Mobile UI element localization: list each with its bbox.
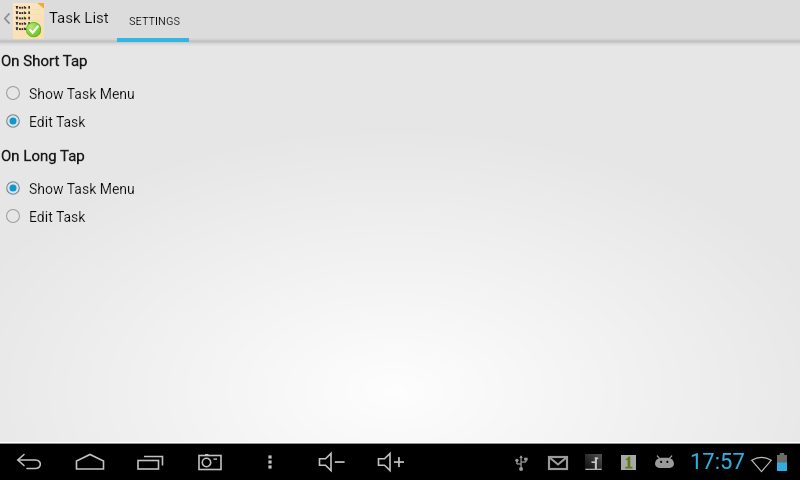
staticText: On Long Tap — [1, 147, 85, 165]
staticText: Edit Task — [29, 209, 86, 225]
button[interactable]: Recent apps — [120, 444, 180, 480]
staticText: Show Task Menu — [29, 181, 135, 197]
button[interactable]: Show Task Menu — [0, 174, 800, 202]
button[interactable]: SETTINGS — [117, 0, 188, 42]
button[interactable]: More options — [240, 444, 300, 480]
staticText: 17:57 — [690, 449, 745, 475]
button[interactable]: Show Task Menu — [0, 79, 800, 107]
button[interactable]: Volume down — [300, 444, 360, 480]
button[interactable]: Navigate up — [0, 0, 13, 37]
button[interactable]: Volume up — [360, 444, 420, 480]
button[interactable]: Edit Task — [0, 107, 800, 135]
staticText: Task List — [49, 9, 109, 27]
staticText: On Short Tap — [1, 52, 88, 70]
staticText: Edit Task — [29, 114, 86, 130]
staticText: SETTINGS — [129, 15, 180, 28]
button[interactable]: Edit Task — [0, 202, 800, 230]
button[interactable]: Home — [60, 444, 120, 480]
staticText: Show Task Menu — [29, 86, 135, 102]
button[interactable]: Screenshot — [180, 444, 240, 480]
button[interactable]: Back — [0, 444, 60, 480]
